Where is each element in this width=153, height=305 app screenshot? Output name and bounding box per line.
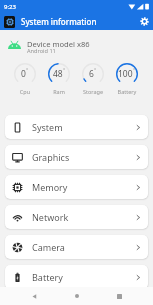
button[interactable]: Settings [136,13,153,30]
staticText: ° [63,67,66,74]
button[interactable]: Network [5,205,148,229]
staticText: Network [32,211,69,223]
staticText: Device model x86 [27,39,90,49]
staticText: 100 [118,68,133,80]
staticText: Memory [32,181,68,193]
staticText: Battery [32,271,63,283]
staticText: Cpu [8,88,42,95]
staticText: Graphics [32,151,70,163]
staticText: Ram [42,88,76,95]
button[interactable]: Graphics [5,145,148,169]
button[interactable]: Home [68,287,86,305]
button[interactable]: Battery [5,265,148,289]
button[interactable]: Camera [5,235,148,259]
staticText: ° [94,67,97,74]
staticText: Battery [110,88,144,95]
staticText: System information [21,16,97,27]
staticText: Camera [32,241,65,253]
staticText: 9:23 [4,3,16,11]
staticText: Storage [76,88,110,95]
staticText: ° [26,67,29,74]
staticText: 0 [21,68,26,80]
staticText: Android 11 [27,47,56,55]
staticText: 48 [53,68,63,80]
staticText: 6 [89,68,94,80]
staticText: System [32,121,63,133]
button[interactable]: Back [25,287,43,305]
button[interactable]: System [5,115,148,139]
button[interactable]: Memory [5,175,148,199]
staticText: ° [133,67,136,74]
button[interactable]: Recents [110,287,128,305]
